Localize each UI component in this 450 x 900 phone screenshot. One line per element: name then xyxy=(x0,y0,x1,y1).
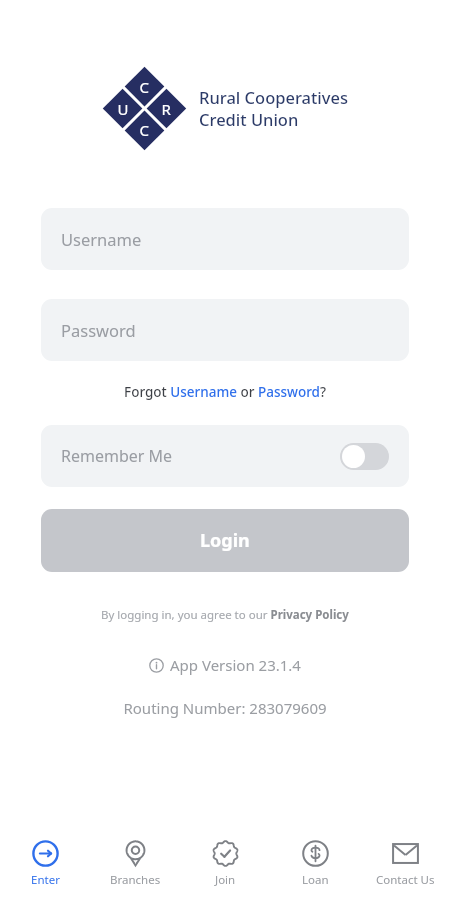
button[interactable]: By logging in, you agree to our Privacy … xyxy=(101,607,349,623)
staticText: Join xyxy=(215,872,236,888)
button[interactable]: Loan xyxy=(270,828,360,900)
button[interactable]: Forgot Username or Password? xyxy=(124,383,327,401)
button[interactable]: Password xyxy=(41,299,409,361)
staticText: Branches xyxy=(110,872,161,888)
staticText: Rural Cooperatives xyxy=(199,86,348,108)
button[interactable]: Login xyxy=(41,509,409,572)
button[interactable]: Contact Us xyxy=(360,828,450,900)
staticText: Routing Number: 283079609 xyxy=(0,698,450,718)
button[interactable]: Enter xyxy=(0,828,90,900)
button[interactable]: Remember Me xyxy=(41,425,409,487)
staticText: C xyxy=(129,72,159,102)
staticText: R xyxy=(151,93,181,123)
staticText: Login xyxy=(200,528,250,553)
staticText: Contact Us xyxy=(376,872,435,888)
staticText: Enter xyxy=(31,872,60,888)
staticText: U xyxy=(107,93,138,124)
staticText: Loan xyxy=(302,872,329,888)
staticText: Credit Union xyxy=(199,108,299,130)
button[interactable]: Join xyxy=(180,828,270,900)
staticText: C xyxy=(129,115,159,145)
staticText: Username xyxy=(61,228,142,250)
staticText: Remember Me xyxy=(61,445,173,467)
staticText: Password xyxy=(61,319,136,341)
button[interactable]: Username xyxy=(41,208,409,270)
staticText: App Version 23.1.4 xyxy=(170,655,301,675)
button[interactable]: Branches xyxy=(90,828,180,900)
